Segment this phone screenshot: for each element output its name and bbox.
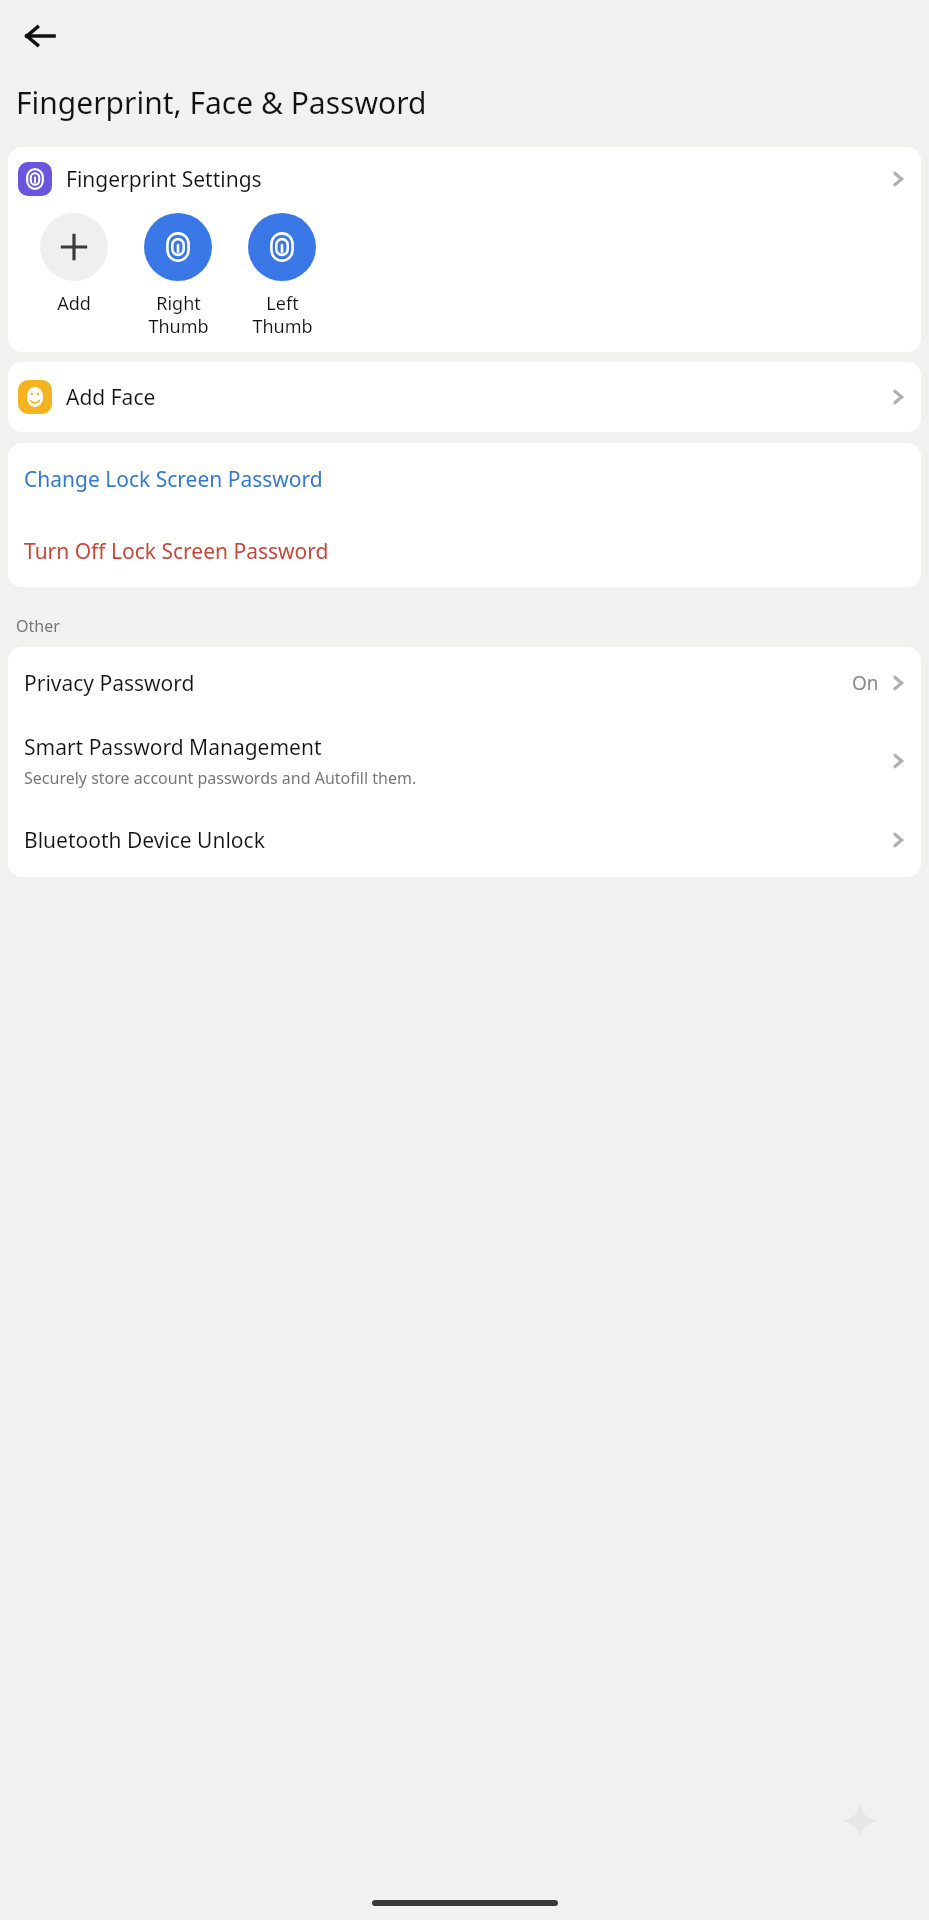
button[interactable]: Add (22, 213, 126, 316)
staticText: Fingerprint, Face & Password (16, 82, 427, 123)
staticText: Add (57, 291, 91, 316)
button[interactable]: Right Thumb (126, 213, 230, 338)
staticText: Securely store account passwords and Aut… (24, 767, 417, 789)
staticText: Bluetooth Device Unlock (24, 826, 265, 855)
staticText: Change Lock Screen Password (24, 465, 323, 494)
button[interactable]: Fingerprint Settings (8, 147, 921, 211)
staticText: On (852, 670, 879, 696)
staticText: Smart Password Management (24, 733, 322, 762)
button[interactable]: Change Lock Screen Password (8, 443, 921, 515)
staticText: Privacy Password (24, 669, 195, 698)
staticText: Add Face (66, 383, 156, 412)
staticText: Turn Off Lock Screen Password (24, 537, 329, 566)
staticText: Left Thumb (252, 291, 313, 338)
staticText: Right Thumb (148, 291, 209, 338)
staticText: Other (16, 615, 60, 637)
button[interactable]: Back (12, 8, 68, 64)
button[interactable]: Left Thumb (230, 213, 334, 338)
button[interactable]: Bluetooth Device Unlock (8, 803, 921, 877)
button[interactable]: Turn Off Lock Screen Password (8, 515, 921, 587)
button[interactable]: Add Face (8, 362, 921, 432)
staticText: Fingerprint Settings (66, 165, 262, 194)
button[interactable]: Smart Password Management (8, 719, 921, 803)
button[interactable]: Privacy Password (8, 647, 921, 719)
